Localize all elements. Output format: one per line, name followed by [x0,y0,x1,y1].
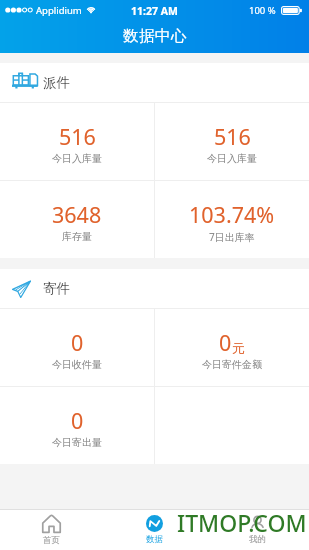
other: 首页 [42,515,61,533]
staticText: 516 [214,122,251,151]
staticText: 首页 [43,535,60,546]
staticText: 今日入库量 [207,152,257,165]
staticText: 今日寄件金额 [202,358,262,371]
button[interactable]: 0 [0,309,154,386]
other: 数据 [146,515,163,532]
button[interactable]: 0 [155,309,309,386]
staticText: 今日入库量 [52,152,102,165]
button[interactable]: 寄件 [0,269,309,308]
staticText: 库存量 [62,230,92,243]
button[interactable]: 派件 [0,63,309,102]
other: 寄件 [12,280,31,298]
staticText: 寄件 [43,280,70,297]
button[interactable]: 0 [0,387,154,464]
staticText: 今日寄出量 [52,436,102,449]
other: 派件 [12,72,38,89]
staticText: 0 [219,328,232,357]
button[interactable]: 首页 [0,510,103,550]
staticText: 派件 [43,74,70,91]
staticText: 元 [232,340,245,356]
staticText: 今日收件量 [52,358,102,371]
button[interactable]: 数据 [103,510,206,550]
staticText: Applidium [36,4,82,17]
staticText: ITMOP.COM [177,507,307,538]
button[interactable]: 516 [0,103,154,180]
staticText: 11:27 AM [131,4,178,18]
staticText: 3648 [52,200,102,229]
other: 我的 [249,515,266,532]
staticText: 7日出库率 [209,230,255,244]
button[interactable]: 516 [155,103,309,180]
staticText: 0 [71,406,84,435]
staticText: 516 [59,122,96,151]
staticText: 0 [71,328,84,357]
staticText: 100 % [249,4,276,17]
button[interactable]: 我的 [206,510,309,550]
other: Battery [281,6,303,15]
staticText: 我的 [249,534,266,545]
button[interactable]: 3648 [0,181,154,258]
button[interactable]: 103.74% [155,181,309,258]
staticText: 103.74% [189,200,275,229]
staticText: 数据中心 [123,26,187,46]
staticText: 数据 [146,534,163,545]
